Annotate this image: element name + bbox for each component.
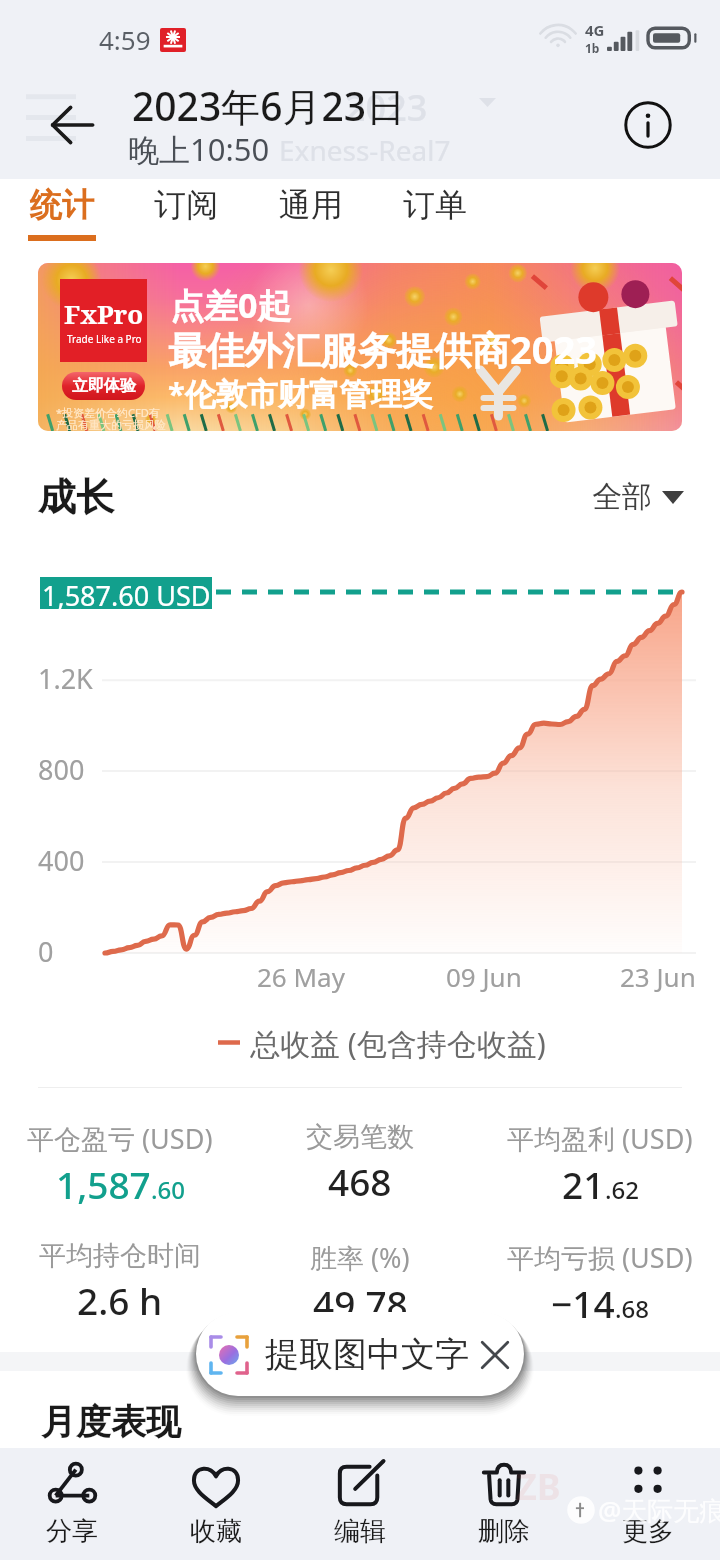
staticText: 21 (562, 1159, 605, 1209)
staticText: Trade Like a Pro (67, 332, 142, 346)
staticText: 26 May (257, 959, 345, 994)
button[interactable]: 删除 (432, 1448, 576, 1560)
staticText: 2023 (345, 83, 428, 132)
staticText: 4G (585, 20, 605, 40)
staticText: 收藏 (190, 1515, 242, 1548)
staticText: 400 (38, 842, 85, 879)
staticText: 1,587 (56, 1159, 151, 1209)
staticText: *伦敦市财富管理奖 (168, 372, 433, 414)
staticText: 删除 (478, 1515, 530, 1548)
button[interactable]: 通用 (263, 181, 359, 245)
button[interactable]: 胜率 (%) (230, 1239, 490, 1328)
staticText: 1b (585, 40, 600, 56)
staticText: 2023年6月23日 (132, 79, 406, 132)
button[interactable]: Info (612, 89, 684, 161)
staticText: 分享 (46, 1515, 98, 1548)
staticText: FxPro (64, 296, 144, 331)
button[interactable]: FxPro (38, 263, 682, 431)
staticText: 交易笔数 (306, 1120, 414, 1154)
staticText: 4:59 (99, 22, 151, 57)
staticText: 全部 (592, 478, 652, 516)
staticText: 通用 (279, 185, 343, 225)
staticText: @天际无痕 (598, 1492, 720, 1528)
staticText: .68 (615, 1292, 649, 1325)
button[interactable]: 平均持仓时间 (0, 1239, 250, 1325)
button[interactable]: Back (36, 89, 108, 161)
staticText: 平均盈利 (USD) (507, 1120, 693, 1157)
staticText: 晚上10:50 (128, 128, 270, 170)
staticText: *投资差价合约CFD有 产品有重大的亏损风险 (56, 405, 166, 431)
staticText: 订阅 (154, 185, 218, 225)
staticText: 总收益 (包含持仓收益) (250, 1023, 546, 1064)
staticText: −14 (551, 1278, 615, 1328)
staticText: 49.78 (313, 1278, 408, 1328)
staticText: 胜率 (%) (310, 1239, 410, 1276)
staticText: 1,587.60 USD (42, 577, 211, 609)
staticText: 23 Jun (620, 959, 696, 994)
button[interactable]: 平仓盈亏 (USD) (0, 1120, 250, 1209)
staticText: 立即体验 (72, 376, 136, 396)
staticText: 最佳外汇服务提供商2023 (168, 323, 597, 375)
staticText: Exness-Real7 (279, 131, 451, 169)
button[interactable]: 更多 (576, 1448, 720, 1560)
button[interactable]: 分享 (0, 1448, 144, 1560)
button[interactable]: 平均亏损 (USD) (470, 1239, 720, 1328)
button[interactable]: 收藏 (144, 1448, 288, 1560)
button[interactable]: 全部 (592, 478, 684, 516)
button[interactable]: 提取图中文字 (196, 1312, 524, 1396)
staticText: .60 (151, 1173, 185, 1206)
staticText: 09 Jun (446, 959, 522, 994)
button[interactable]: 订单 (387, 181, 483, 245)
staticText: 1.2K (38, 660, 93, 697)
staticText: 0 (38, 933, 54, 970)
staticText: 统计 (30, 185, 94, 225)
staticText: 月度表现 (41, 1400, 181, 1444)
staticText: 平仓盈亏 (USD) (27, 1120, 213, 1157)
button[interactable]: 编辑 (288, 1448, 432, 1560)
staticText: 800 (38, 751, 85, 788)
staticText: 编辑 (334, 1515, 386, 1548)
staticText: 平均亏损 (USD) (507, 1239, 693, 1276)
staticText: 点差0起 (170, 282, 292, 328)
staticText: 提取图中文字 (265, 1333, 469, 1376)
staticText: 平均持仓时间 (39, 1239, 201, 1273)
staticText: 更多 (622, 1515, 674, 1548)
staticText: .62 (605, 1173, 639, 1206)
staticText: 订单 (403, 185, 467, 225)
staticText: 2.6 h (77, 1275, 163, 1325)
button[interactable]: 平均盈利 (USD) (470, 1120, 720, 1209)
button[interactable]: 统计 (14, 181, 110, 245)
staticText: 468 (328, 1156, 392, 1206)
staticText: ZB (516, 1462, 561, 1511)
button[interactable]: 交易笔数 (230, 1120, 490, 1206)
button[interactable]: 订阅 (138, 181, 234, 245)
staticText: 成长 (38, 473, 114, 521)
